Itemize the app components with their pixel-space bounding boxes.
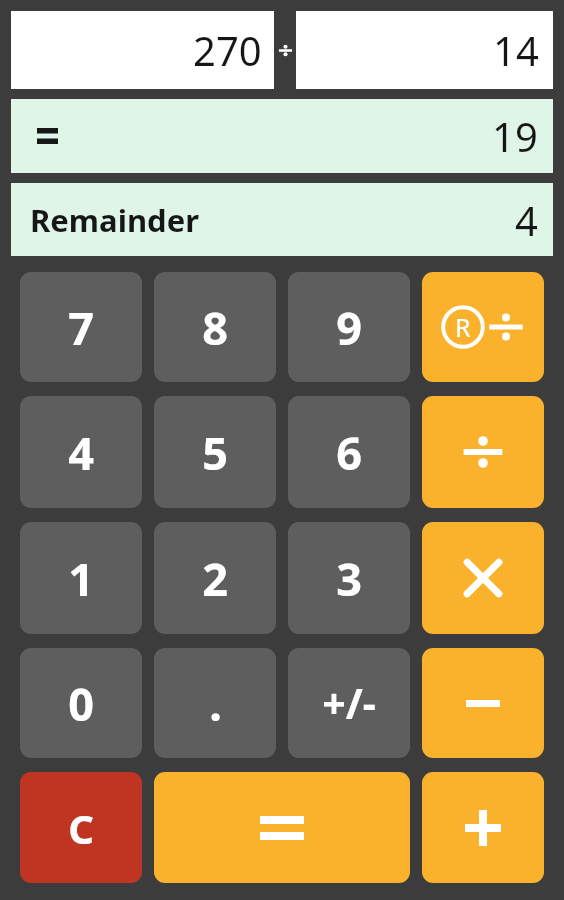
- staticText: R: [455, 310, 471, 344]
- staticText: Remainder: [30, 199, 200, 241]
- staticText: 3: [336, 548, 362, 609]
- staticText: 14: [493, 23, 539, 77]
- button[interactable]: Divide with remainder: [422, 272, 544, 382]
- button[interactable]: 2: [154, 522, 276, 634]
- button[interactable]: Subtract: [422, 648, 544, 758]
- button[interactable]: +/-: [288, 648, 410, 758]
- staticText: 19: [492, 109, 538, 163]
- button[interactable]: 1: [20, 522, 142, 634]
- staticText: 9: [336, 297, 362, 358]
- button[interactable]: 9: [288, 272, 410, 382]
- button[interactable]: 7: [20, 272, 142, 382]
- button[interactable]: 19: [11, 99, 553, 173]
- staticText: 0: [68, 673, 94, 734]
- button[interactable]: Divide: [422, 396, 544, 508]
- button[interactable]: 270: [11, 11, 274, 89]
- staticText: 8: [202, 297, 228, 358]
- button[interactable]: 6: [288, 396, 410, 508]
- button[interactable]: Remainder: [11, 183, 553, 256]
- staticText: 4: [68, 422, 94, 483]
- button[interactable]: 0: [20, 648, 142, 758]
- staticText: 270: [193, 23, 262, 77]
- button[interactable]: 5: [154, 396, 276, 508]
- button[interactable]: 8: [154, 272, 276, 382]
- staticText: .: [209, 673, 222, 734]
- button[interactable]: C: [20, 772, 142, 883]
- button[interactable]: 14: [296, 11, 553, 89]
- staticText: 2: [202, 548, 228, 609]
- button[interactable]: 3: [288, 522, 410, 634]
- button[interactable]: .: [154, 648, 276, 758]
- staticText: 1: [68, 548, 94, 609]
- staticText: 4: [515, 193, 538, 247]
- button[interactable]: Multiply: [422, 522, 544, 634]
- staticText: 7: [68, 297, 94, 358]
- staticText: 6: [336, 422, 362, 483]
- button[interactable]: Equals: [154, 772, 410, 883]
- staticText: 5: [202, 422, 228, 483]
- button[interactable]: 4: [20, 396, 142, 508]
- staticText: C: [68, 801, 94, 855]
- button[interactable]: Add: [422, 772, 544, 883]
- staticText: +/-: [322, 675, 376, 731]
